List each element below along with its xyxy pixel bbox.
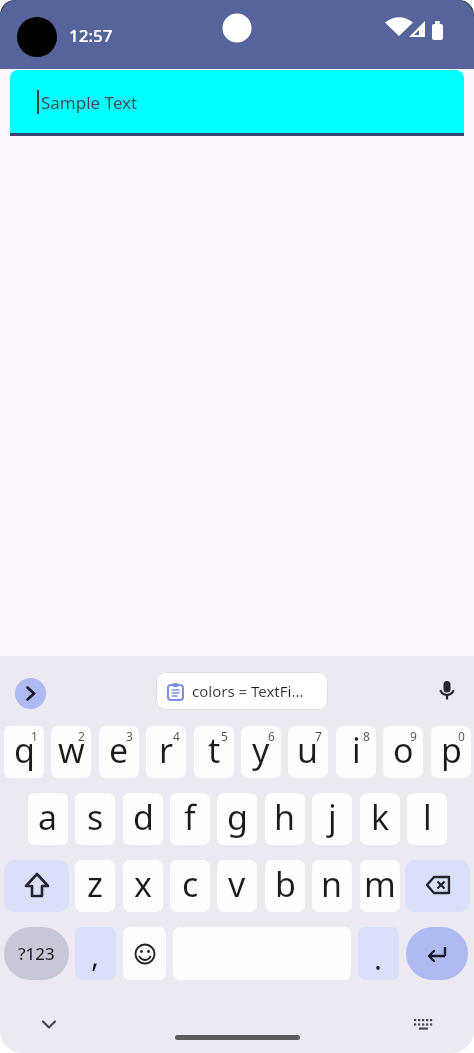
staticText: 9 — [410, 728, 417, 744]
button[interactable]: f — [170, 793, 210, 845]
button[interactable]: w — [51, 726, 91, 778]
button[interactable]: l — [407, 793, 447, 845]
staticText: . — [374, 938, 383, 979]
button[interactable]: k — [360, 793, 400, 845]
button[interactable] — [412, 1016, 434, 1038]
button[interactable] — [405, 860, 470, 912]
staticText: Sample Text — [41, 91, 138, 114]
button[interactable] — [41, 1017, 57, 1033]
staticText: w — [58, 727, 85, 773]
staticText: i — [352, 727, 361, 773]
staticText: 6 — [268, 728, 275, 744]
button[interactable] — [123, 927, 166, 980]
staticText: s — [87, 794, 104, 840]
button[interactable]: h — [265, 793, 305, 845]
staticText: h — [274, 794, 296, 840]
staticText: v — [228, 861, 246, 907]
staticText: q — [14, 727, 35, 773]
button[interactable]: c — [170, 860, 210, 912]
button[interactable]: i — [336, 726, 376, 778]
staticText: x — [134, 861, 152, 907]
staticText: 8 — [363, 728, 370, 744]
button[interactable]: e — [99, 726, 139, 778]
button[interactable]: n — [312, 860, 352, 912]
staticText: a — [38, 794, 58, 840]
button[interactable]: x — [123, 860, 163, 912]
staticText: 0 — [458, 728, 465, 744]
button[interactable]: z — [75, 860, 115, 912]
staticText: d — [133, 794, 154, 840]
button[interactable]: g — [217, 793, 257, 845]
button[interactable]: Sample Text — [10, 70, 464, 133]
button[interactable]: colors = TextFi… — [156, 672, 328, 710]
staticText: n — [321, 861, 343, 907]
button[interactable]: a — [28, 793, 68, 845]
button[interactable]: b — [265, 860, 305, 912]
staticText: k — [371, 794, 390, 840]
staticText: 2 — [78, 728, 85, 744]
staticText: c — [182, 861, 199, 907]
staticText: , — [91, 935, 100, 976]
button[interactable]: d — [123, 793, 163, 845]
staticText: 12:57 — [69, 24, 113, 47]
staticText: t — [208, 727, 221, 773]
staticText: z — [87, 861, 103, 907]
button[interactable] — [406, 927, 468, 980]
staticText: b — [275, 861, 296, 907]
button[interactable]: p — [431, 726, 471, 778]
button[interactable]: j — [312, 793, 352, 845]
staticText: y — [252, 727, 270, 773]
staticText: 3 — [126, 728, 133, 744]
staticText: colors = TextFi… — [192, 681, 304, 701]
staticText: m — [364, 861, 396, 907]
staticText: 5 — [221, 728, 228, 744]
staticText: p — [441, 727, 462, 773]
staticText: 7 — [315, 728, 322, 744]
staticText: o — [393, 727, 414, 773]
staticText: l — [423, 794, 432, 840]
button[interactable]: s — [75, 793, 115, 845]
button[interactable]: ?123 — [4, 927, 69, 980]
staticText: 4 — [173, 728, 180, 744]
button[interactable]: y — [241, 726, 281, 778]
staticText: u — [297, 727, 319, 773]
staticText: ?123 — [18, 942, 55, 965]
button[interactable]: v — [217, 860, 257, 912]
button[interactable] — [437, 680, 457, 700]
button[interactable]: q — [4, 726, 44, 778]
button[interactable]: . — [358, 927, 399, 980]
button[interactable]: u — [288, 726, 328, 778]
button[interactable] — [15, 678, 46, 709]
button[interactable]: r — [146, 726, 186, 778]
staticText: g — [227, 794, 248, 840]
staticText: f — [184, 794, 196, 840]
staticText: j — [328, 794, 337, 840]
button[interactable] — [4, 860, 69, 912]
staticText: e — [109, 727, 129, 773]
button[interactable]: o — [383, 726, 423, 778]
staticText: r — [159, 727, 174, 773]
button[interactable]: m — [360, 860, 400, 912]
button[interactable]: , — [75, 927, 116, 980]
staticText: 1 — [31, 728, 38, 744]
button[interactable]: t — [194, 726, 234, 778]
